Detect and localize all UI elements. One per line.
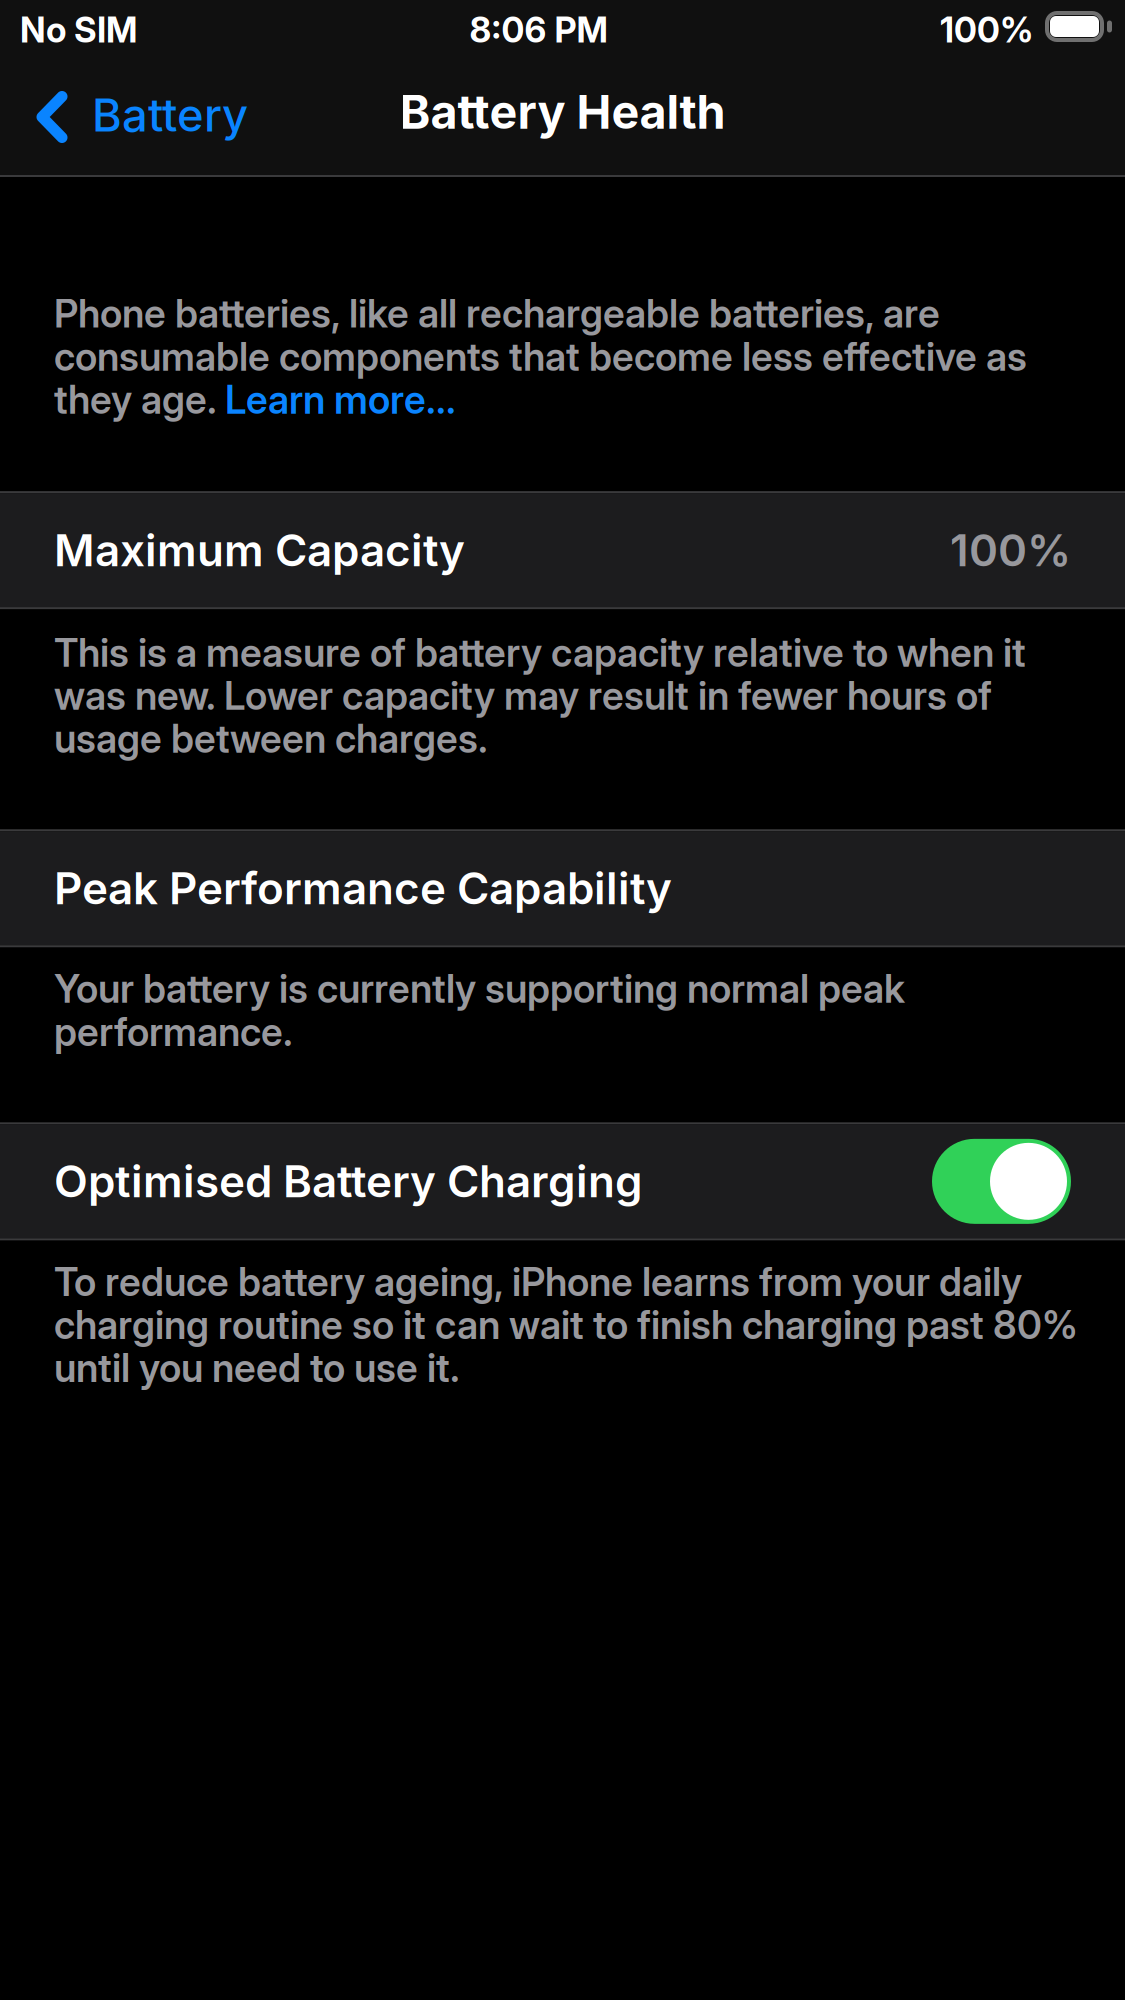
staticText: To reduce battery ageing, iPhone learns … bbox=[54, 1260, 1078, 1389]
staticText: This is a measure of battery capacity re… bbox=[54, 631, 1026, 760]
staticText: Your battery is currently supporting nor… bbox=[54, 967, 905, 1053]
staticText: Battery Health bbox=[399, 84, 725, 140]
button[interactable]: Optimised Battery Charging bbox=[932, 1139, 1071, 1224]
staticText: Phone batteries, like all rechargeable b… bbox=[54, 292, 1027, 421]
staticText: 8:06 PM bbox=[469, 9, 607, 51]
staticText: Maximum Capacity bbox=[54, 523, 465, 577]
staticText: Optimised Battery Charging bbox=[54, 1155, 643, 1208]
staticText: 100% bbox=[950, 523, 1071, 577]
staticText: Battery bbox=[92, 88, 248, 142]
staticText: Peak Performance Capability bbox=[54, 862, 672, 915]
staticText: No SIM bbox=[20, 9, 137, 51]
staticText: 100% bbox=[940, 9, 1033, 51]
button[interactable]: Battery bbox=[0, 70, 266, 175]
